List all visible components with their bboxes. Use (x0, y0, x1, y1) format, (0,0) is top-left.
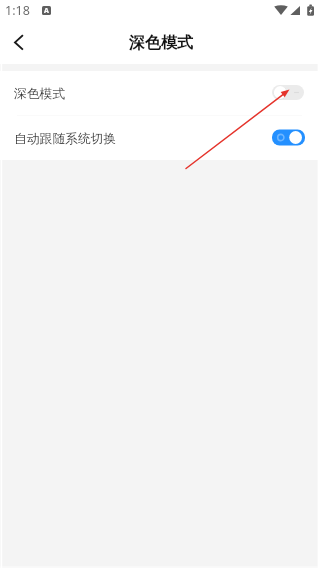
button[interactable]: Switch, on (272, 130, 304, 145)
staticText: 深色模式 (14, 86, 66, 102)
staticText: 自动跟随系统切换 (14, 131, 117, 147)
button[interactable]: 自动跟随系统切换 (0, 116, 320, 160)
button[interactable]: Switch, off (272, 85, 304, 100)
staticText: A (44, 6, 49, 15)
button[interactable]: 深色模式 (0, 71, 320, 115)
staticText: 1:18 (5, 2, 30, 19)
staticText: 深色模式 (129, 33, 193, 53)
button[interactable]: Back (0, 20, 40, 60)
